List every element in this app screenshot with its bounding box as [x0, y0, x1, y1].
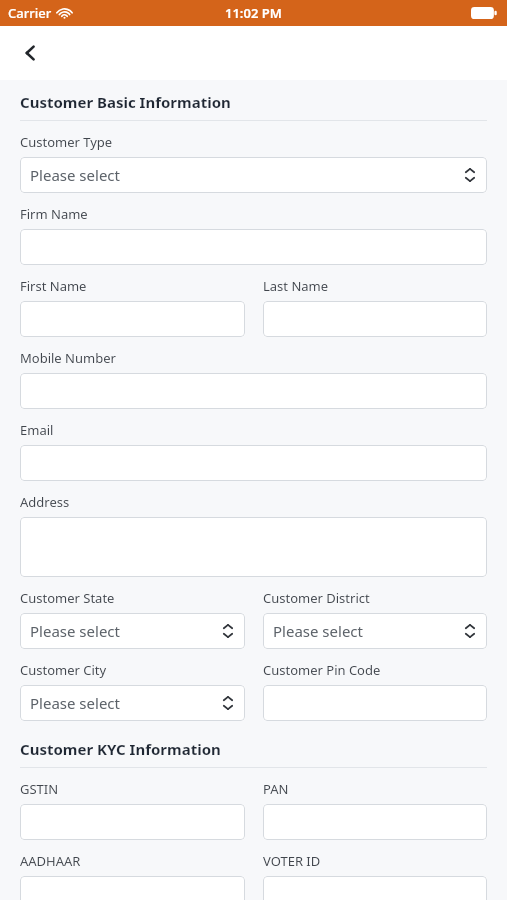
staticText: Mobile Number — [20, 349, 116, 367]
staticText: Carrier — [8, 4, 52, 22]
button[interactable]: Back — [12, 35, 48, 71]
staticText: Customer City — [20, 661, 107, 679]
staticText: Customer District — [263, 589, 370, 607]
button[interactable] — [20, 876, 245, 900]
staticText: Customer Basic Information — [20, 92, 231, 112]
staticText: Customer KYC Information — [20, 739, 221, 759]
staticText: AADHAAR — [20, 852, 81, 870]
button[interactable] — [263, 804, 487, 840]
button[interactable]: Please select — [20, 613, 245, 649]
staticText: Email — [20, 421, 54, 439]
staticText: Please select — [30, 693, 120, 713]
button[interactable]: Please select — [20, 157, 487, 193]
staticText: GSTIN — [20, 780, 59, 798]
staticText: Address — [20, 493, 70, 511]
staticText: Customer Pin Code — [263, 661, 381, 679]
button[interactable] — [20, 445, 487, 481]
staticText: Customer State — [20, 589, 115, 607]
button[interactable] — [20, 229, 487, 265]
button[interactable]: Please select — [20, 685, 245, 721]
button[interactable] — [263, 876, 487, 900]
button[interactable] — [20, 301, 245, 337]
button[interactable]: Please select — [263, 613, 487, 649]
staticText: PAN — [263, 780, 289, 798]
button[interactable] — [20, 804, 245, 840]
staticText: Please select — [30, 621, 120, 641]
staticText: Last Name — [263, 277, 329, 295]
staticText: 11:02 PM — [225, 4, 282, 22]
staticText: Customer Type — [20, 133, 113, 151]
button[interactable] — [20, 517, 487, 577]
staticText: First Name — [20, 277, 87, 295]
staticText: Firm Name — [20, 205, 88, 223]
button[interactable] — [263, 301, 487, 337]
button[interactable] — [263, 685, 487, 721]
button[interactable] — [20, 373, 487, 409]
staticText: Please select — [30, 165, 120, 185]
staticText: VOTER ID — [263, 852, 321, 870]
staticText: Please select — [273, 621, 363, 641]
